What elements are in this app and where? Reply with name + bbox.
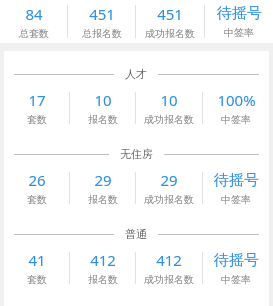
button[interactable]: 26 [4, 165, 69, 211]
staticText: 451 [157, 4, 183, 24]
staticText: 成功报名数 [144, 273, 194, 286]
button[interactable]: 451 [136, 0, 204, 43]
button[interactable]: 待摇号 [203, 245, 269, 291]
staticText: 待摇号 [214, 251, 259, 270]
staticText: 成功报名数 [144, 113, 194, 126]
staticText: 待摇号 [214, 171, 259, 190]
button[interactable]: 29 [70, 165, 135, 211]
staticText: 中签率 [221, 193, 251, 206]
staticText: 26 [28, 170, 46, 190]
button[interactable]: 10 [70, 85, 135, 131]
staticText: 套数 [27, 273, 47, 286]
button[interactable]: 10 [136, 85, 202, 131]
button[interactable]: 17 [4, 85, 69, 131]
staticText: 无住房 [120, 147, 153, 161]
button[interactable]: 412 [70, 245, 135, 291]
staticText: 10 [94, 90, 112, 110]
staticText: 待摇号 [217, 4, 262, 23]
staticText: 451 [89, 4, 115, 24]
staticText: 29 [160, 170, 178, 190]
staticText: 中签率 [221, 273, 251, 286]
button[interactable]: 待摇号 [205, 0, 273, 43]
staticText: 报名数 [88, 273, 118, 286]
staticText: 17 [28, 90, 46, 110]
staticText: 总报名数 [82, 27, 122, 40]
staticText: 报名数 [88, 193, 118, 206]
staticText: 成功报名数 [145, 27, 195, 40]
button[interactable]: 41 [4, 245, 69, 291]
staticText: 41 [28, 250, 46, 270]
button[interactable]: 29 [136, 165, 202, 211]
button[interactable]: 451 [68, 0, 135, 43]
button[interactable]: 84 [0, 0, 67, 43]
button[interactable]: 待摇号 [203, 165, 269, 211]
staticText: 套数 [27, 193, 47, 206]
button[interactable]: 412 [136, 245, 202, 291]
staticText: 10 [160, 90, 178, 110]
button[interactable]: 100% [203, 85, 269, 131]
staticText: 412 [90, 250, 116, 270]
staticText: 84 [25, 4, 43, 24]
staticText: 中签率 [221, 113, 251, 126]
staticText: 人才 [125, 67, 147, 81]
staticText: 中签率 [224, 26, 254, 39]
staticText: 成功报名数 [144, 193, 194, 206]
staticText: 总套数 [19, 27, 49, 40]
staticText: 报名数 [88, 113, 118, 126]
staticText: 29 [94, 170, 112, 190]
staticText: 412 [156, 250, 182, 270]
staticText: 套数 [27, 113, 47, 126]
staticText: 普通 [125, 227, 147, 241]
staticText: 100% [217, 90, 256, 110]
